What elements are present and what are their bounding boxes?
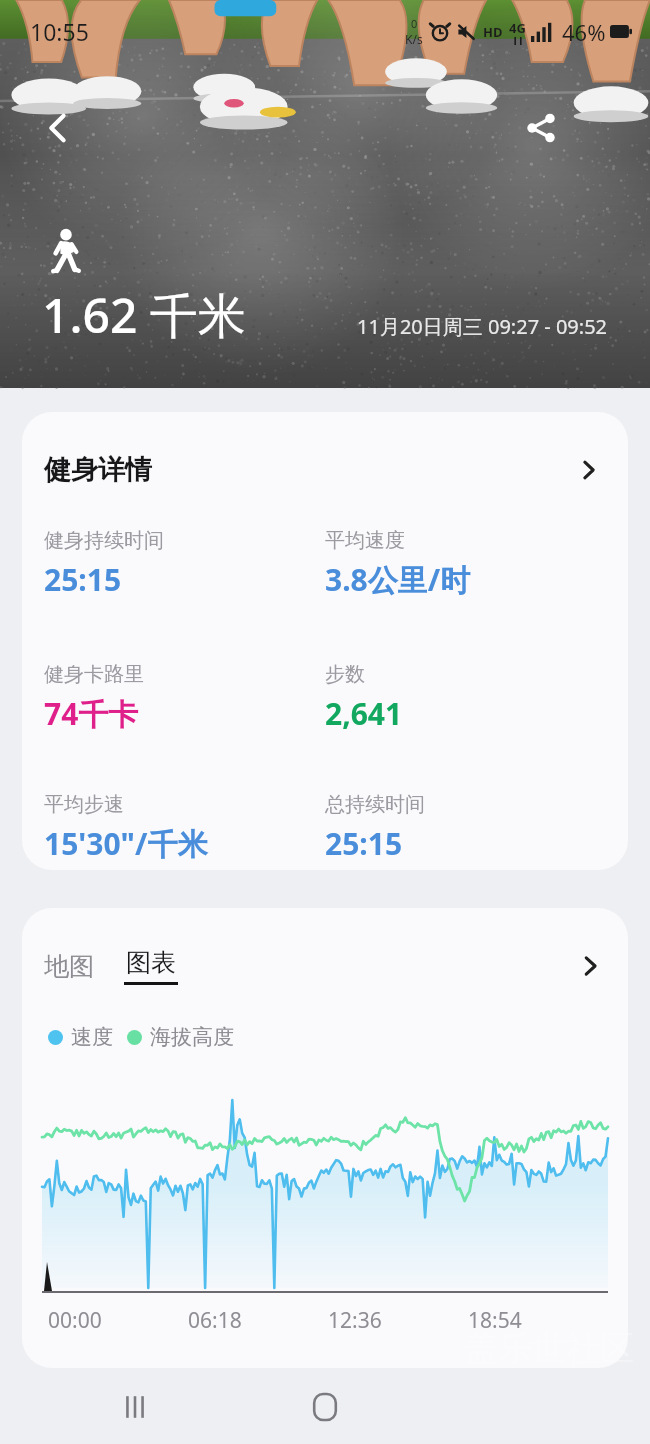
staticText: 06:18: [188, 1306, 328, 1335]
button[interactable]: Share: [513, 100, 569, 156]
button[interactable]: 健身详情: [22, 412, 628, 528]
staticText: 10:55: [30, 16, 89, 47]
staticText: 健身详情: [44, 453, 152, 487]
staticText: 步数: [325, 662, 365, 687]
staticText: 盖乐世社区: [464, 1327, 634, 1370]
staticText: 海拔高度: [150, 1024, 234, 1050]
button[interactable]: 图表: [120, 943, 182, 989]
staticText: 74千卡: [44, 693, 139, 734]
staticText: 图表: [126, 947, 176, 978]
staticText: 健身卡路里: [44, 662, 144, 687]
button[interactable]: Back: [30, 100, 86, 156]
staticText: 总持续时间: [325, 792, 425, 817]
button[interactable]: Recents: [108, 1380, 162, 1434]
staticText: 3.8公里/时: [325, 559, 471, 600]
button[interactable]: 地图: [40, 947, 98, 986]
staticText: 00:00: [48, 1306, 188, 1335]
staticText: 健身持续时间: [44, 528, 164, 553]
staticText: 速度: [71, 1024, 113, 1050]
staticText: 2,641: [325, 693, 403, 734]
staticText: 0: [411, 16, 418, 31]
staticText: 25:15: [44, 559, 122, 600]
staticText: 18:54: [468, 1306, 608, 1335]
staticText: 平均速度: [325, 528, 405, 553]
staticText: 平均步速: [44, 792, 124, 817]
staticText: 12:36: [328, 1306, 468, 1335]
staticText: 4G: [509, 19, 526, 37]
staticText: 46%: [562, 17, 606, 47]
staticText: 25:15: [325, 823, 403, 864]
staticText: 15'30"/千米: [44, 823, 208, 864]
staticText: K/s: [405, 31, 423, 47]
staticText: 地图: [44, 951, 94, 982]
staticText: HD: [483, 23, 503, 41]
staticText: 11月20日周三 09:27 - 09:52: [357, 313, 608, 340]
staticText: 1.62 千米: [42, 282, 246, 348]
button[interactable]: Open chart: [574, 949, 608, 983]
button[interactable]: Home: [298, 1380, 352, 1434]
